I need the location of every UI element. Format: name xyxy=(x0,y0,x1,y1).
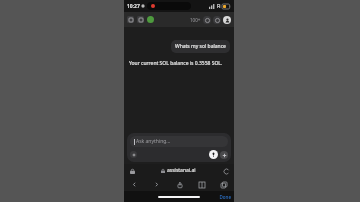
button[interactable]: Attach xyxy=(130,151,137,158)
button[interactable]: Wallet connected xyxy=(147,16,154,23)
button[interactable]: Send xyxy=(209,150,218,159)
button[interactable]: Menu xyxy=(127,16,134,23)
staticText: Fi xyxy=(217,3,221,9)
staticText: 10:27 xyxy=(127,3,140,10)
button[interactable]: Bookmarks xyxy=(196,179,207,190)
button[interactable]: assistanai.ai xyxy=(158,166,199,175)
button[interactable]: Reload xyxy=(222,167,230,175)
button[interactable]: Back xyxy=(129,179,140,190)
staticText: Ask anything... xyxy=(136,138,171,145)
button[interactable]: Reader view xyxy=(128,167,136,175)
button[interactable]: Account xyxy=(223,16,231,24)
staticText: assistanai.ai xyxy=(167,167,196,174)
button[interactable]: More xyxy=(220,151,228,159)
button[interactable]: New chat xyxy=(137,16,144,23)
button[interactable]: Done xyxy=(215,194,231,200)
button[interactable]: Tabs xyxy=(218,179,229,190)
button[interactable]: Whats my sol balance xyxy=(171,40,230,53)
staticText: 100+ xyxy=(190,17,201,23)
button[interactable]: Info xyxy=(203,16,211,24)
button[interactable]: Share xyxy=(174,179,185,190)
button[interactable]: Forward xyxy=(151,179,162,190)
button[interactable]: Ask anything... xyxy=(130,136,228,147)
button[interactable]: Settings xyxy=(213,16,221,24)
staticText: Your current SOL balance is 0.3558 SOL. xyxy=(129,60,223,67)
staticText: Whats my sol balance xyxy=(175,43,226,50)
